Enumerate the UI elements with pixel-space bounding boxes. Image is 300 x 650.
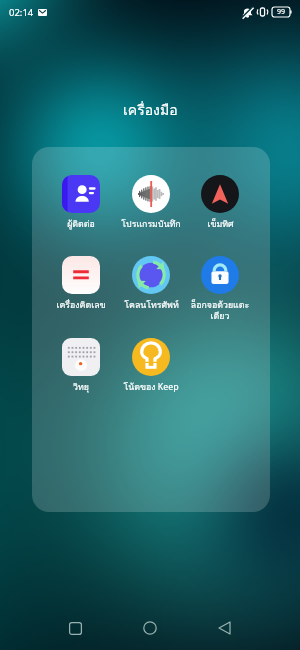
staticText: โน้ตของ Keep xyxy=(123,380,179,394)
button[interactable]: เข็มทิศ xyxy=(184,175,256,231)
button[interactable]: Recents xyxy=(38,606,112,650)
button[interactable]: Back xyxy=(187,606,262,650)
staticText: วิทยุ xyxy=(73,380,89,394)
button[interactable]: โปรแกรมบันทึก xyxy=(115,175,187,231)
button[interactable]: โน้ตของ Keep xyxy=(115,338,187,394)
staticText: 99 xyxy=(277,7,286,17)
staticText: เครื่องมือ xyxy=(123,99,178,121)
button[interactable]: Home xyxy=(112,606,187,650)
staticText: เครื่องคิดเลข xyxy=(56,298,106,312)
staticText: เข็มทิศ xyxy=(207,217,234,231)
staticText: โคลนโทรศัพท์ xyxy=(124,298,179,312)
button[interactable]: โคลนโทรศัพท์ xyxy=(115,256,187,312)
button[interactable]: ล็อกจอด้วยแตะเดียว xyxy=(184,256,256,323)
button[interactable]: วิทยุ xyxy=(45,338,117,394)
button[interactable]: เครื่องคิดเลข xyxy=(45,256,117,312)
staticText: 02:14 xyxy=(9,6,34,19)
staticText: ผู้ติดต่อ xyxy=(67,217,95,231)
staticText: ล็อกจอด้วยแตะเดียว xyxy=(184,298,256,323)
staticText: โปรแกรมบันทึก xyxy=(121,217,181,231)
button[interactable]: ผู้ติดต่อ xyxy=(45,175,117,231)
